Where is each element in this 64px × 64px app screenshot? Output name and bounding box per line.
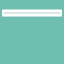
other: Card bottom edge: [2, 16, 62, 17]
button[interactable]: [2, 10, 62, 16]
